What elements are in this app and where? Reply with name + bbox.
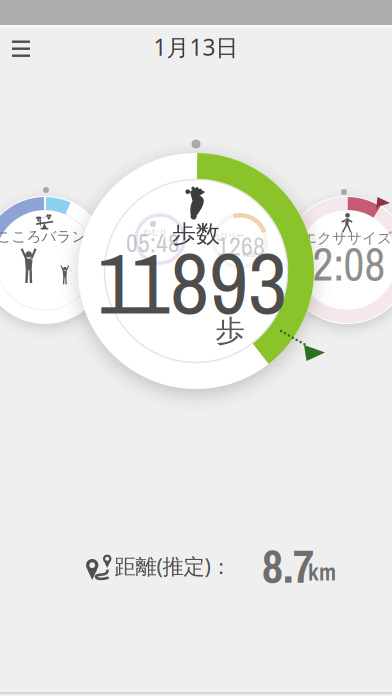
staticText: 距離(推定)： — [114, 552, 231, 580]
staticText: 2:08 — [312, 233, 385, 295]
staticText: 歩 — [215, 313, 244, 349]
staticText: 8.7 — [262, 535, 314, 597]
staticText: 05:48 — [126, 226, 180, 260]
button[interactable]: Menu — [1, 28, 41, 68]
staticText: 11893 — [97, 225, 287, 340]
staticText: ねむり — [143, 227, 167, 237]
staticText: 歩数 — [172, 219, 220, 249]
button[interactable]: 歩数 11893歩 — [78, 153, 314, 389]
staticText: エクササイズ — [302, 229, 392, 247]
staticText: km — [308, 556, 336, 588]
staticText: 1268 — [217, 228, 265, 263]
staticText: カロリー — [212, 231, 244, 241]
staticText: 1月13日 — [153, 32, 238, 62]
button[interactable]: エクササイズ — [279, 192, 392, 328]
staticText: kcal — [242, 249, 256, 259]
button[interactable]: こころバランス — [0, 192, 113, 328]
staticText: こころバランス — [0, 227, 101, 245]
